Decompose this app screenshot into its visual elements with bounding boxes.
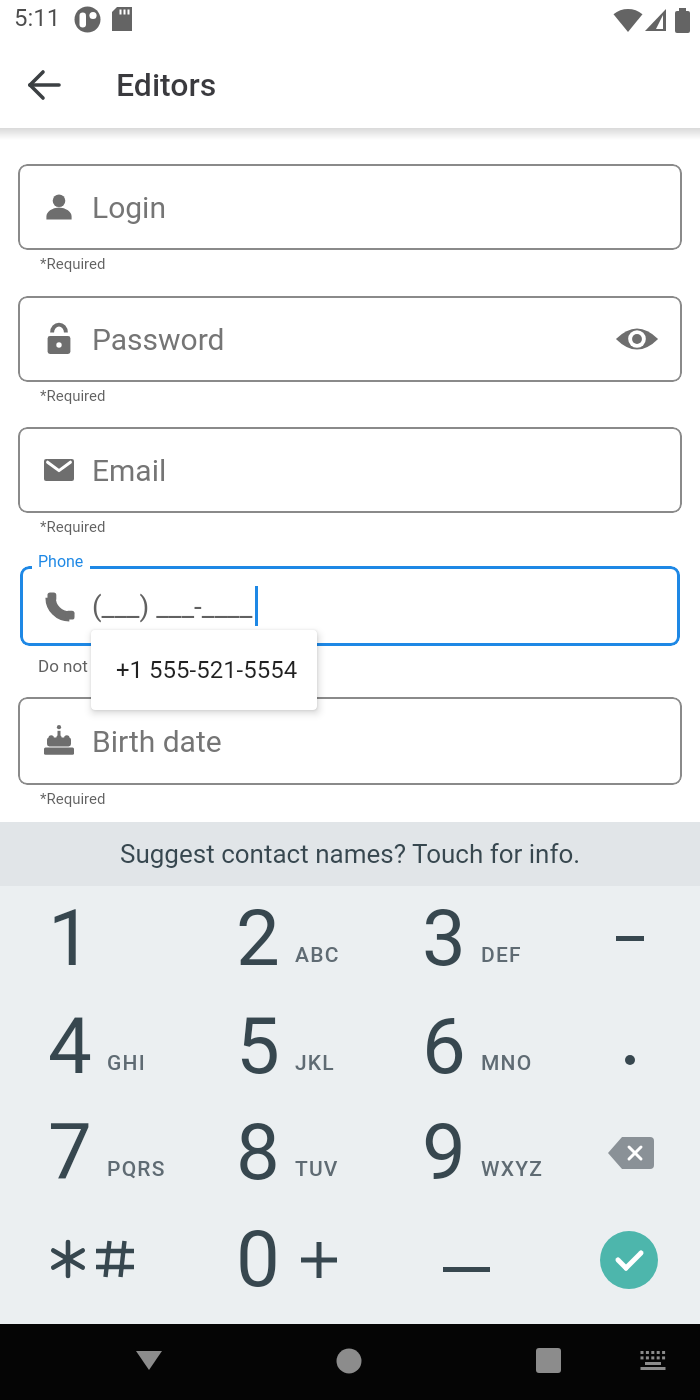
staticText: Editors <box>116 66 217 104</box>
staticText: Email <box>92 453 167 488</box>
staticText: 7 <box>48 1107 92 1198</box>
staticText: 4 <box>48 1001 92 1092</box>
staticText: Suggest contact names? Touch for info. <box>120 839 581 869</box>
button[interactable] <box>608 1137 654 1169</box>
button[interactable]: Suggest contact names? Touch for info. <box>0 822 700 886</box>
staticText: DEF <box>481 943 522 968</box>
staticText: TUV <box>295 1157 339 1182</box>
button[interactable]: Login <box>18 164 682 250</box>
button[interactable] <box>639 1350 667 1371</box>
staticText: *Required <box>40 518 106 536</box>
staticText: *Required <box>40 387 106 405</box>
staticText: 5:11 <box>14 4 61 32</box>
staticText: Login <box>92 190 166 225</box>
button[interactable] <box>536 1348 562 1374</box>
staticText: *Required <box>40 790 106 808</box>
button[interactable] <box>26 67 62 103</box>
staticText: PQRS <box>107 1157 166 1182</box>
staticText: (___) ___-____ <box>92 590 253 623</box>
staticText: 2 <box>236 893 280 984</box>
button[interactable] <box>616 318 658 360</box>
staticText: 6 <box>422 1001 466 1092</box>
staticText: 9 <box>422 1107 466 1198</box>
staticText: +1 555-521-5554 <box>116 656 298 684</box>
staticText: Phone <box>38 552 84 571</box>
staticText: Birth date <box>92 724 222 759</box>
staticText: Password <box>92 322 225 357</box>
button[interactable] <box>600 1231 658 1289</box>
staticText: MNO <box>481 1051 533 1076</box>
button[interactable]: Password <box>18 296 682 382</box>
staticText: GHI <box>107 1051 146 1076</box>
staticText: 1 <box>48 893 92 984</box>
staticText: Do not <box>38 656 88 676</box>
staticText: ABC <box>295 943 340 968</box>
staticText: WXYZ <box>481 1157 544 1182</box>
staticText: 5 <box>236 1001 280 1092</box>
staticText: JKL <box>295 1051 335 1076</box>
button[interactable] <box>135 1350 163 1372</box>
staticText: 8 <box>236 1107 280 1198</box>
button[interactable]: (___) ___-____ <box>20 566 680 646</box>
staticText: 3 <box>422 893 466 984</box>
button[interactable]: +1 555-521-5554 <box>91 630 317 710</box>
staticText: 0 <box>236 1214 280 1305</box>
button[interactable]: Birth date <box>18 697 682 785</box>
button[interactable] <box>336 1348 362 1374</box>
button[interactable]: Email <box>18 427 682 513</box>
staticText: *Required <box>40 255 106 273</box>
